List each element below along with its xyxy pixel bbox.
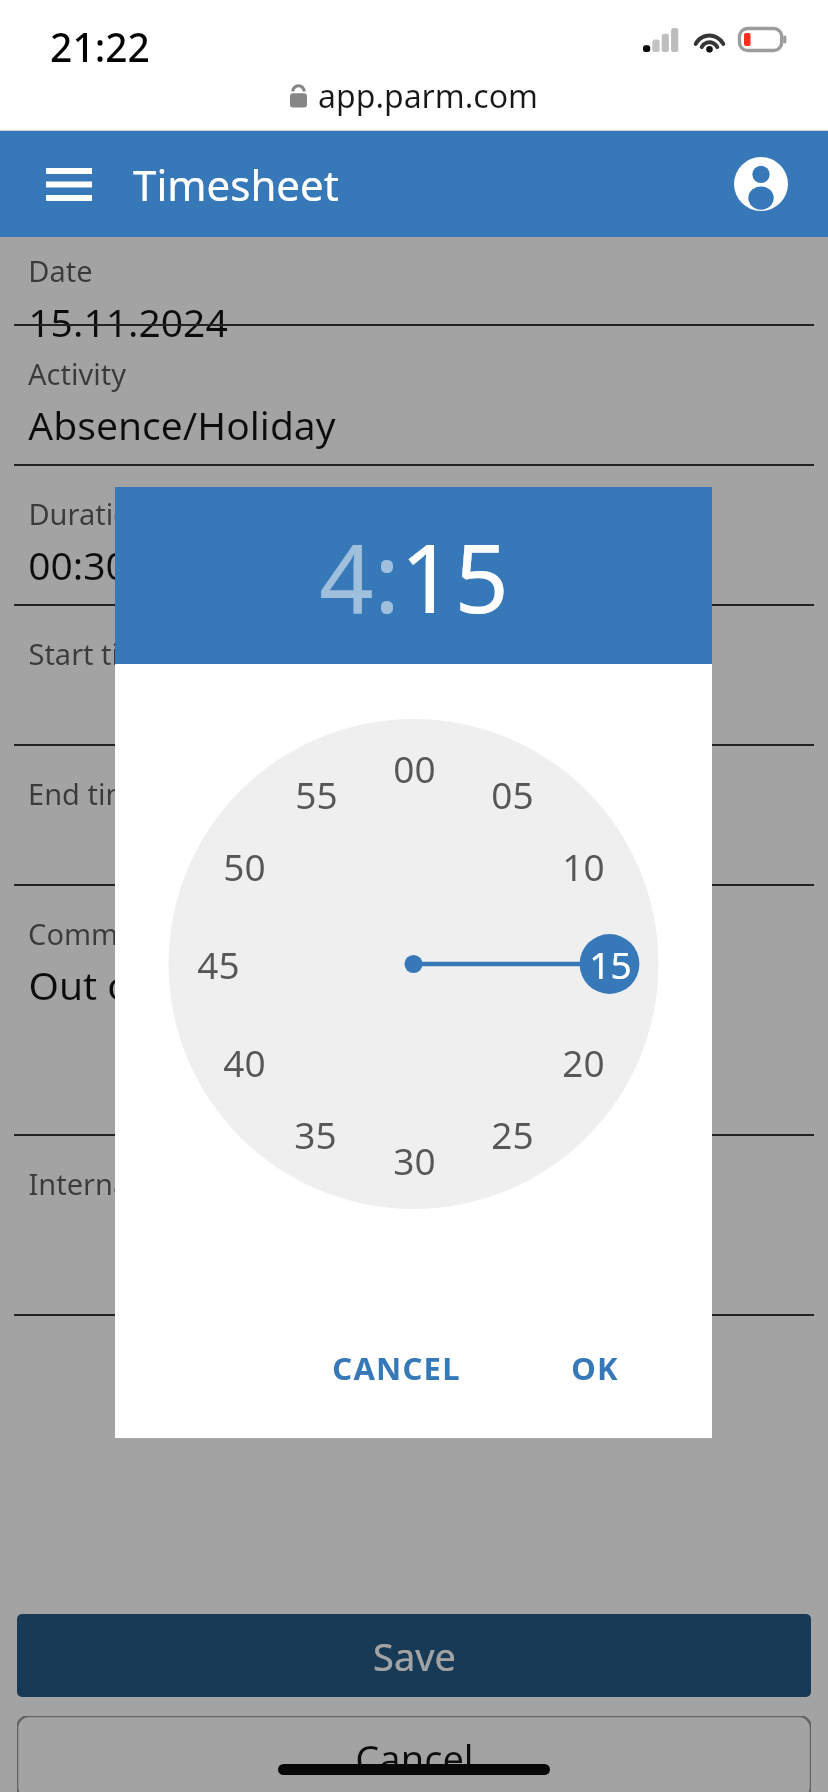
button[interactable]: 20	[549, 1033, 617, 1091]
staticText: 10	[562, 841, 605, 891]
staticText: Out of office	[28, 958, 256, 1011]
staticText: 50	[223, 841, 266, 891]
button[interactable]: 40	[210, 1033, 278, 1091]
staticText: 35	[294, 1109, 337, 1159]
button[interactable]: 35	[281, 1105, 349, 1163]
staticText: :	[374, 511, 400, 640]
button[interactable]: Account	[728, 151, 794, 217]
button[interactable]: 4	[319, 511, 374, 640]
button[interactable]: 50	[210, 837, 278, 895]
button[interactable]: 00	[380, 739, 448, 797]
button[interactable]: End time	[0, 760, 828, 900]
staticText: 45	[197, 939, 240, 989]
staticText: app.parm.com	[318, 74, 538, 118]
staticText: End time	[28, 774, 149, 813]
staticText: 00:30	[28, 538, 128, 591]
button[interactable]: Activity	[0, 340, 828, 480]
button[interactable]: 45	[184, 935, 252, 993]
staticText: 40	[223, 1037, 266, 1087]
button[interactable]: Internal note	[0, 1150, 828, 1330]
button[interactable]: 30	[380, 1131, 448, 1189]
button[interactable]: Duration	[0, 480, 828, 620]
staticText: Internal note	[28, 1164, 207, 1203]
staticText: Save	[373, 1630, 456, 1682]
button[interactable]: 05	[478, 765, 546, 823]
staticText: Activity	[28, 354, 126, 393]
staticText: 15	[589, 939, 632, 989]
staticText: CANCEL	[332, 1347, 461, 1389]
staticText: 25	[491, 1109, 534, 1159]
staticText: 30	[393, 1135, 436, 1185]
button[interactable]: Date	[0, 237, 828, 340]
staticText: Cancel	[355, 1732, 474, 1784]
button[interactable]: 55	[282, 765, 350, 823]
staticText: 00	[393, 743, 436, 793]
staticText: Date	[28, 251, 93, 290]
button[interactable]: OK	[553, 1335, 637, 1401]
staticText: Comment	[28, 914, 163, 953]
staticText: 20	[562, 1037, 605, 1087]
button[interactable]: CANCEL	[314, 1335, 479, 1401]
staticText: 4	[319, 511, 374, 640]
staticText: 21:22	[50, 20, 150, 73]
button[interactable]: Open navigation menu	[38, 153, 100, 215]
button[interactable]: 10	[549, 837, 617, 895]
button[interactable]: Cancel	[17, 1716, 811, 1792]
staticText: Absence/Holiday	[28, 398, 336, 451]
button[interactable]: Start time	[0, 620, 828, 760]
staticText: 15	[400, 511, 509, 640]
button[interactable]: 25	[478, 1105, 546, 1163]
staticText: 15.11.2024	[28, 295, 228, 340]
button[interactable]: Save	[17, 1614, 811, 1697]
staticText: OK	[571, 1347, 619, 1389]
staticText: Duration	[28, 494, 149, 533]
staticText: Timesheet	[133, 156, 339, 213]
button[interactable]: 15	[400, 511, 509, 640]
staticText: 05	[491, 769, 534, 819]
staticText: Start time	[28, 634, 163, 673]
staticText: 55	[295, 769, 338, 819]
button[interactable]: Comment	[0, 900, 828, 1150]
button[interactable]: 15	[576, 935, 644, 993]
